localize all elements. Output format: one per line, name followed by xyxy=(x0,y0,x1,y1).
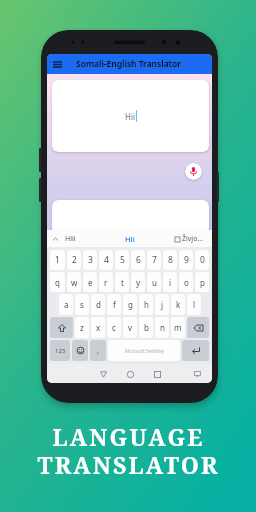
staticText: d xyxy=(96,299,101,310)
button[interactable]: l xyxy=(187,294,201,315)
button[interactable]: h xyxy=(139,294,153,315)
staticText: v xyxy=(128,322,133,333)
staticText: w xyxy=(71,277,78,288)
button[interactable]: w xyxy=(67,272,81,292)
staticText: a xyxy=(64,299,69,310)
button[interactable]: Hii xyxy=(125,234,135,244)
staticText: 6 xyxy=(136,254,141,266)
staticText: Somali-English Translator xyxy=(76,58,181,70)
staticText: n xyxy=(160,322,165,333)
button[interactable]: m xyxy=(171,317,185,338)
button[interactable] xyxy=(152,369,162,379)
button[interactable]: p xyxy=(195,272,209,292)
staticText: c xyxy=(112,322,116,333)
staticText: g xyxy=(128,299,133,310)
staticText: Hii xyxy=(125,111,136,122)
staticText: h xyxy=(144,299,149,310)
button[interactable]: Hii xyxy=(52,80,209,152)
staticText: i xyxy=(169,277,172,288)
staticText: l xyxy=(193,299,196,310)
staticText: k xyxy=(176,299,181,310)
button[interactable]: 6 xyxy=(131,250,145,270)
staticText: TRANSLATOR xyxy=(37,449,220,480)
staticText: q xyxy=(55,277,60,288)
button[interactable]: x xyxy=(91,317,105,338)
button[interactable]: o xyxy=(179,272,193,292)
button[interactable]: b xyxy=(139,317,153,338)
staticText: x xyxy=(96,322,101,333)
button[interactable]: 2 xyxy=(67,250,81,270)
staticText: 4 xyxy=(104,254,109,266)
button[interactable]: q xyxy=(50,272,65,292)
staticText: 3 xyxy=(88,254,93,266)
button[interactable]: j xyxy=(155,294,169,315)
staticText: 7 xyxy=(152,254,157,266)
button[interactable] xyxy=(98,369,108,379)
staticText: e xyxy=(88,277,93,288)
staticText: , xyxy=(97,346,99,356)
staticText: LANGUAGE xyxy=(52,421,205,452)
button[interactable]: u xyxy=(147,272,161,292)
button[interactable]: Živjo... xyxy=(175,234,204,244)
button[interactable]: 0 xyxy=(195,250,209,270)
button[interactable]: 9 xyxy=(179,250,193,270)
button[interactable]: y xyxy=(131,272,145,292)
button[interactable] xyxy=(192,369,202,379)
staticText: 9 xyxy=(184,254,189,266)
button[interactable]: a xyxy=(59,294,73,315)
button[interactable]: 3 xyxy=(83,250,97,270)
button[interactable] xyxy=(125,369,135,379)
button[interactable] xyxy=(47,54,67,74)
button[interactable]: 8 xyxy=(163,250,177,270)
staticText: j xyxy=(161,299,164,310)
staticText: u xyxy=(152,277,157,288)
button[interactable]: Microsoft SwiftKey xyxy=(108,340,180,361)
staticText: 2 xyxy=(72,254,77,266)
button[interactable] xyxy=(52,200,209,234)
staticText: b xyxy=(144,322,149,333)
staticText: Microsoft SwiftKey xyxy=(125,348,164,354)
button[interactable]: i xyxy=(163,272,177,292)
button[interactable] xyxy=(50,317,73,338)
button[interactable]: v xyxy=(123,317,137,338)
staticText: 0 xyxy=(200,254,205,266)
button[interactable]: 7 xyxy=(147,250,161,270)
button[interactable]: n xyxy=(155,317,169,338)
button[interactable]: g xyxy=(123,294,137,315)
button[interactable]: 1 xyxy=(50,250,65,270)
button[interactable]: Hiii xyxy=(65,234,76,244)
button[interactable] xyxy=(182,340,209,361)
staticText: z xyxy=(80,322,84,333)
button[interactable]: d xyxy=(91,294,105,315)
staticText: 123 xyxy=(55,347,66,355)
staticText: 8 xyxy=(168,254,173,266)
button[interactable]: , xyxy=(90,340,106,361)
staticText: s xyxy=(80,299,84,310)
button[interactable]: c xyxy=(107,317,121,338)
button[interactable] xyxy=(185,163,202,180)
button[interactable]: e xyxy=(83,272,97,292)
staticText: Živjo... xyxy=(182,234,204,244)
button[interactable]: r xyxy=(99,272,113,292)
button[interactable]: 123 xyxy=(50,340,70,361)
staticText: o xyxy=(184,277,189,288)
button[interactable] xyxy=(72,340,88,361)
button[interactable]: 5 xyxy=(115,250,129,270)
staticText: p xyxy=(200,277,205,288)
button[interactable]: k xyxy=(171,294,185,315)
staticText: 1 xyxy=(55,254,60,266)
staticText: m xyxy=(174,322,182,333)
button[interactable] xyxy=(187,317,209,338)
button[interactable]: f xyxy=(107,294,121,315)
button[interactable]: z xyxy=(75,317,89,338)
button[interactable]: t xyxy=(115,272,129,292)
staticText: f xyxy=(113,299,116,310)
staticText: y xyxy=(136,277,141,288)
staticText: 5 xyxy=(120,254,125,266)
staticText: t xyxy=(121,277,124,288)
button[interactable]: s xyxy=(75,294,89,315)
staticText: r xyxy=(104,277,108,288)
button[interactable]: 4 xyxy=(99,250,113,270)
